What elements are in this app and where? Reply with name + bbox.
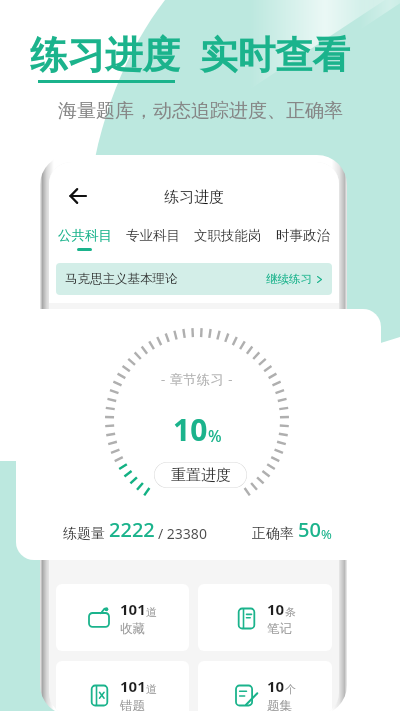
button[interactable]: 101 [56,661,189,711]
staticText: 条 [285,605,296,619]
button[interactable]: 文职技能岗 [194,227,262,244]
staticText: 101 [120,676,146,696]
staticText: 继续练习 [266,272,312,286]
staticText: 马克思主义基本理论 [65,271,178,287]
staticText: 专业科目 [126,227,180,244]
button[interactable]: 10 [198,661,332,711]
staticText: 个 [285,682,296,696]
staticText: - 章节练习 - [161,370,233,388]
staticText: 海量题库，动态追踪进度、正确率 [58,99,343,123]
button[interactable]: Back [55,173,101,219]
staticText: 练题量 [63,525,105,543]
staticText: 2222 [109,516,155,543]
staticText: 道 [146,605,157,619]
button[interactable]: 重置进度 [154,462,247,488]
staticText: 重置进度 [171,466,231,485]
button[interactable]: 时事政治 [276,227,330,244]
staticText: 练习进度 [30,32,180,79]
staticText: 正确率 [252,525,294,543]
staticText: 文职技能岗 [194,227,262,244]
staticText: 实时查看 [200,32,350,79]
button[interactable]: 公共科目 [58,227,112,244]
staticText: 题集 [267,698,292,711]
staticText: 101 [120,599,146,619]
staticText: 练习进度 [164,188,224,207]
staticText: % [208,425,222,447]
button[interactable]: 马克思主义基本理论 [56,263,332,295]
button[interactable]: 101 [56,584,189,651]
staticText: 10 [173,409,208,450]
staticText: 道 [146,682,157,696]
button[interactable]: 专业科目 [126,227,180,244]
staticText: 错题 [120,698,145,711]
staticText: 笔记 [267,621,292,637]
staticText: 10 [267,676,285,696]
staticText: 收藏 [120,621,145,637]
button[interactable]: 10 [198,584,332,651]
staticText: / 23380 [158,524,207,543]
staticText: 公共科目 [58,227,112,244]
staticText: % [321,525,332,543]
staticText: 时事政治 [276,227,330,244]
staticText: 50 [298,516,321,543]
staticText: 10 [267,599,285,619]
